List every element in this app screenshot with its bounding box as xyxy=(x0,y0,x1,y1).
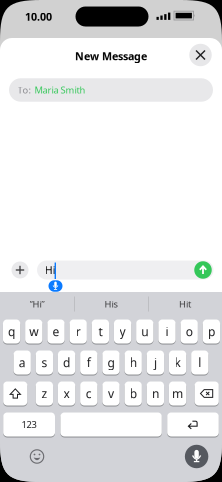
button[interactable]: g xyxy=(102,350,120,375)
staticText: “Hi” xyxy=(29,298,44,310)
staticText: Hi xyxy=(45,263,56,277)
staticText: i xyxy=(165,323,168,339)
staticText: Maria Smith xyxy=(34,84,85,96)
button[interactable]: m xyxy=(169,381,186,406)
button[interactable]: His xyxy=(76,293,146,315)
staticText: o xyxy=(186,323,193,339)
staticText: q xyxy=(8,323,15,339)
staticText: w xyxy=(29,323,38,339)
button[interactable]: Space xyxy=(60,412,162,437)
staticText: n xyxy=(152,385,159,401)
button[interactable]: a xyxy=(13,350,31,375)
staticText: d xyxy=(63,354,70,370)
button[interactable]: o xyxy=(180,319,198,344)
button[interactable]: p xyxy=(203,319,220,344)
staticText: a xyxy=(19,354,26,370)
staticText: e xyxy=(52,323,59,339)
button[interactable]: l xyxy=(191,350,208,375)
button[interactable]: w xyxy=(25,319,42,344)
button[interactable]: Send xyxy=(194,261,212,279)
staticText: 123 xyxy=(22,418,37,431)
button[interactable]: Add attachment xyxy=(11,261,28,278)
button[interactable]: Dictation xyxy=(185,445,208,468)
button[interactable]: t xyxy=(92,319,109,344)
staticText: j xyxy=(154,354,157,370)
staticText: y xyxy=(120,323,126,339)
button[interactable]: h xyxy=(124,350,142,375)
button[interactable]: y xyxy=(114,319,131,344)
staticText: p xyxy=(208,323,215,339)
button[interactable]: f xyxy=(80,350,97,375)
staticText: u xyxy=(141,323,148,339)
button[interactable]: c xyxy=(80,381,97,406)
staticText: k xyxy=(175,354,181,370)
staticText: His xyxy=(104,298,117,310)
staticText: l xyxy=(198,354,201,370)
button[interactable]: u xyxy=(136,319,153,344)
button[interactable]: x xyxy=(58,381,75,406)
button[interactable]: Return xyxy=(167,412,219,437)
staticText: 10.00 xyxy=(25,9,52,24)
staticText: t xyxy=(98,323,102,339)
button[interactable]: 123 xyxy=(3,412,55,437)
staticText: c xyxy=(86,385,92,401)
staticText: s xyxy=(41,354,47,370)
button[interactable]: r xyxy=(69,319,87,344)
button[interactable]: k xyxy=(169,350,186,375)
button[interactable]: To: xyxy=(9,78,213,102)
staticText: r xyxy=(76,323,81,339)
staticText: b xyxy=(130,385,137,401)
button[interactable]: Close xyxy=(189,44,212,66)
button[interactable]: n xyxy=(147,381,164,406)
staticText: m xyxy=(172,385,183,401)
button[interactable]: i xyxy=(158,319,176,344)
button[interactable]: d xyxy=(58,350,75,375)
button[interactable]: Hit xyxy=(150,293,220,315)
button[interactable]: v xyxy=(102,381,120,406)
staticText: v xyxy=(108,385,114,401)
button[interactable]: Delete xyxy=(195,381,219,406)
button[interactable]: Shift xyxy=(3,381,27,406)
staticText: x xyxy=(64,385,70,401)
button[interactable]: e xyxy=(47,319,65,344)
staticText: g xyxy=(107,354,114,370)
button[interactable]: Emoji xyxy=(28,447,46,465)
button[interactable]: “Hi” xyxy=(2,293,72,315)
staticText: f xyxy=(87,354,91,370)
staticText: h xyxy=(130,354,137,370)
button[interactable]: j xyxy=(147,350,164,375)
staticText: Hit xyxy=(179,298,191,310)
button[interactable]: q xyxy=(3,319,20,344)
staticText: New Message xyxy=(75,49,147,63)
staticText: z xyxy=(41,385,47,401)
button[interactable]: b xyxy=(124,381,142,406)
button[interactable]: s xyxy=(36,350,53,375)
button[interactable]: z xyxy=(36,381,53,406)
staticText: To: xyxy=(17,84,31,96)
